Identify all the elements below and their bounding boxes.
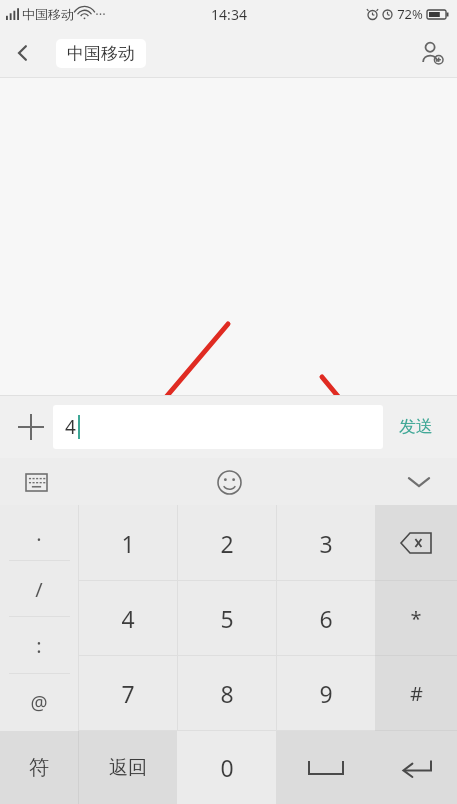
button[interactable]: 9 [276,656,375,731]
button[interactable]: 0 [177,731,276,804]
staticText: 3 [319,528,333,559]
button[interactable]: 6 [276,581,375,656]
staticText: * [410,605,422,632]
staticText: : [36,632,42,659]
staticText: . [36,520,42,547]
button[interactable]: 发送 [383,395,449,458]
staticText: 返回 [109,756,147,780]
button[interactable]: 3 [276,505,375,581]
staticText: # [410,680,423,707]
button[interactable]: Add contact [407,28,457,78]
staticText: 1 [121,528,135,559]
button[interactable]: Back [0,30,46,76]
button[interactable]: : [0,617,78,674]
staticText: ··· [95,5,106,23]
button[interactable]: 1 [78,505,177,581]
staticText: 2 [220,528,234,559]
button[interactable]: @ [0,674,78,731]
staticText: 中国移动 [22,6,74,22]
button[interactable]: # [375,656,457,731]
staticText: 5 [220,603,234,634]
button[interactable]: Space [276,731,375,804]
button[interactable]: Add attachment [8,404,53,449]
staticText: 14:34 [211,5,247,24]
staticText: 发送 [399,416,433,437]
staticText: 0 [220,752,234,783]
staticText: 6 [319,603,333,634]
button[interactable]: 返回 [78,731,177,804]
button[interactable]: * [375,581,457,656]
staticText: 72% [397,5,423,23]
button[interactable]: Emoji [207,460,251,504]
staticText: / [35,576,43,603]
button[interactable]: Delete [375,505,457,581]
staticText: @ [30,690,48,716]
button[interactable]: . [0,505,78,561]
button[interactable]: Enter [375,731,457,804]
button[interactable]: 符 [0,731,78,804]
button[interactable]: 5 [177,581,276,656]
button[interactable]: / [0,561,78,617]
button[interactable]: Hide keyboard [397,460,441,504]
staticText: 符 [29,755,49,780]
button[interactable]: 2 [177,505,276,581]
staticText: 7 [121,678,135,709]
staticText: 中国移动 [67,43,135,64]
button[interactable]: 中国移动 [56,39,146,68]
staticText: 8 [220,678,234,709]
button[interactable]: Keyboard layout [14,460,58,504]
staticText: 4 [65,414,76,440]
button[interactable]: 4 [53,405,383,449]
staticText: 4 [121,603,135,634]
button[interactable]: 4 [78,581,177,656]
staticText: 9 [319,678,333,709]
button[interactable]: 7 [78,656,177,731]
button[interactable]: 8 [177,656,276,731]
